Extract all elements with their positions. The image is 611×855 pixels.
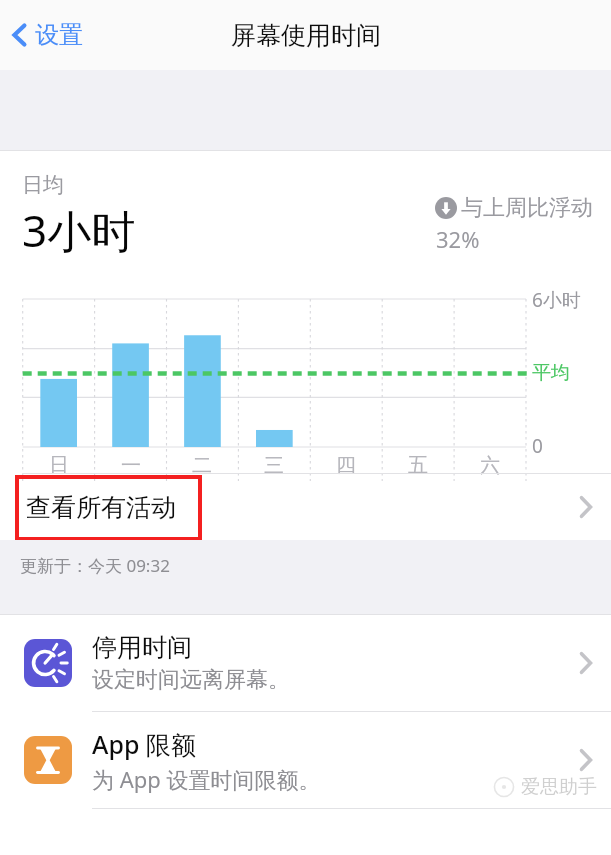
staticText: 屏幕使用时间 <box>231 20 381 51</box>
staticText: 日 <box>49 453 69 478</box>
staticText: 为 App 设置时间限额。 <box>92 764 321 794</box>
staticText: 设定时间远离屏幕。 <box>92 666 290 694</box>
staticText: 二 <box>192 453 212 478</box>
staticText: 平均 <box>532 361 570 385</box>
staticText: 与上周比浮动 <box>461 194 593 222</box>
staticText: 更新于：今天 09:32 <box>20 554 170 577</box>
button[interactable]: 设置 <box>0 14 95 56</box>
staticText: 3小时 <box>22 200 136 260</box>
staticText: 六 <box>480 453 500 478</box>
staticText: 停用时间 <box>92 632 192 663</box>
staticText: App 限额 <box>92 727 196 761</box>
staticText: 32% <box>436 224 480 254</box>
button[interactable]: 查看所有活动 <box>0 474 611 540</box>
staticText: 三 <box>264 453 284 478</box>
staticText: 日均 <box>22 172 64 198</box>
staticText: 一 <box>121 453 141 478</box>
staticText: 四 <box>336 453 356 478</box>
staticText: 爱思助手 <box>521 775 597 799</box>
staticText: 0 <box>532 433 543 459</box>
staticText: 查看所有活动 <box>26 492 176 523</box>
staticText: 设置 <box>35 20 83 50</box>
button[interactable]: App 限额 <box>0 712 611 808</box>
staticText: 6小时 <box>532 287 581 313</box>
staticText: 五 <box>408 453 428 478</box>
button[interactable]: 停用时间 <box>0 615 611 711</box>
